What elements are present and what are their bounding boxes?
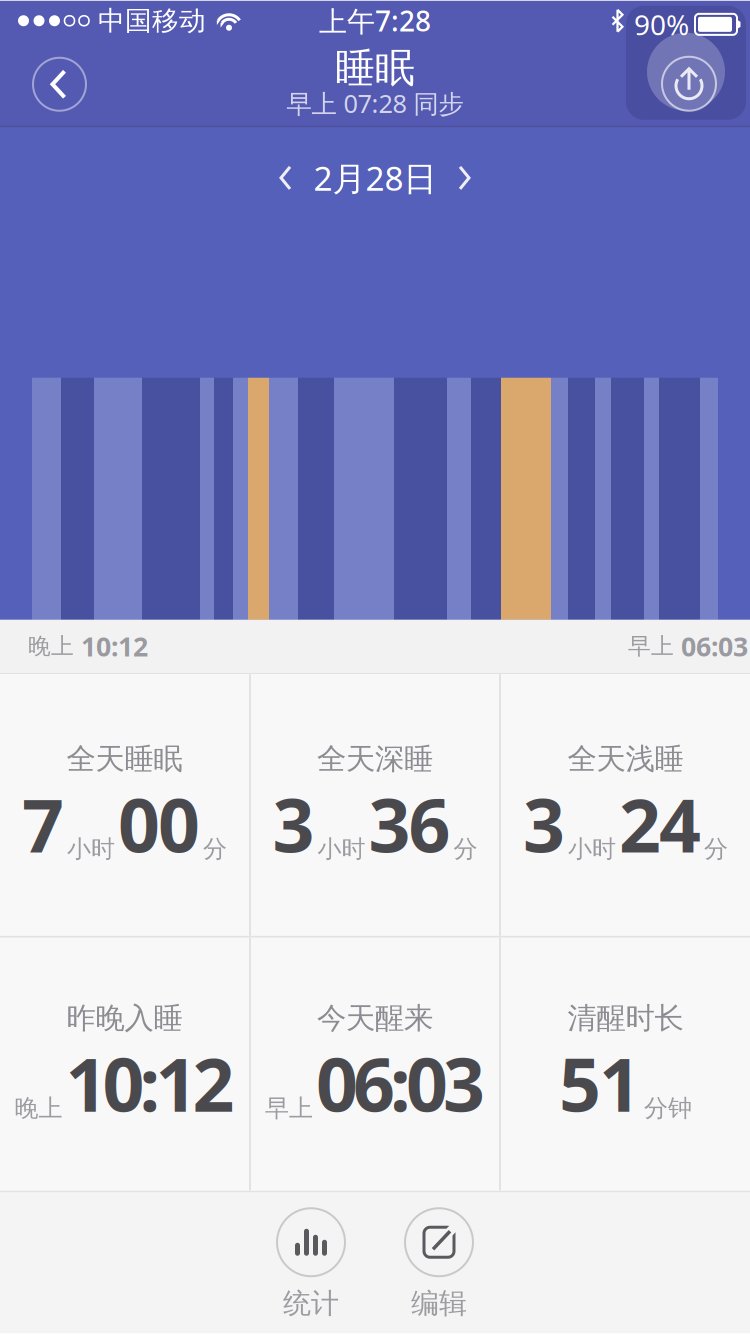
staticText: 06:03 [316,1035,485,1132]
staticText: 编辑 [411,1286,467,1321]
staticText: 早上 [265,1093,313,1123]
staticText: 睡眠 [335,44,415,93]
button[interactable]: 昨晚入睡 [0,938,249,1191]
staticText: 分 [203,834,227,864]
staticText: 3 [523,775,565,873]
staticText: 10:12 [81,628,148,664]
staticText: 上午7:28 [319,2,431,39]
staticText: 分 [704,834,728,864]
button[interactable]: 今天醒来 [251,938,499,1191]
staticText: 分钟 [644,1093,692,1123]
button[interactable]: 前一天 [271,164,299,192]
staticText: 今天醒来 [317,1000,433,1036]
staticText: 全天深睡 [317,741,433,777]
button[interactable]: 全天浅睡 [501,674,750,936]
staticText: 24 [619,775,701,873]
staticText: 全天睡眠 [66,741,182,777]
staticText: 36 [368,775,450,873]
button[interactable]: 后一天 [450,164,478,192]
staticText: 统计 [283,1286,339,1321]
staticText: 00 [118,775,200,873]
staticText: 早上 [628,632,674,660]
staticText: 晚上 [14,1093,62,1123]
staticText: 分 [453,834,477,864]
staticText: 7 [22,775,64,873]
button[interactable]: 分享 [626,6,746,120]
button[interactable]: 编辑 [405,1208,473,1321]
staticText: 3 [272,775,314,873]
staticText: 小时 [568,834,616,864]
staticText: 清醒时长 [567,1000,683,1036]
button[interactable]: 全天睡眠 [0,674,249,936]
staticText: 早上 07:28 同步 [286,86,463,120]
button[interactable]: 统计 [277,1208,345,1321]
staticText: 全天浅睡 [567,741,683,777]
button[interactable]: 返回 [33,58,86,111]
button[interactable]: 全天深睡 [251,674,499,936]
staticText: 06:03 [681,628,748,664]
staticText: 51 [559,1035,641,1132]
staticText: 晚上 [28,632,74,660]
staticText: 小时 [67,834,115,864]
staticText: 小时 [317,834,365,864]
staticText: 10:12 [65,1035,234,1132]
button[interactable]: 清醒时长 [501,938,750,1191]
staticText: 昨晚入睡 [66,1000,182,1036]
staticText: 中国移动 [98,4,206,37]
staticText: 2月28日 [313,156,436,200]
staticText: 90% [634,6,689,43]
